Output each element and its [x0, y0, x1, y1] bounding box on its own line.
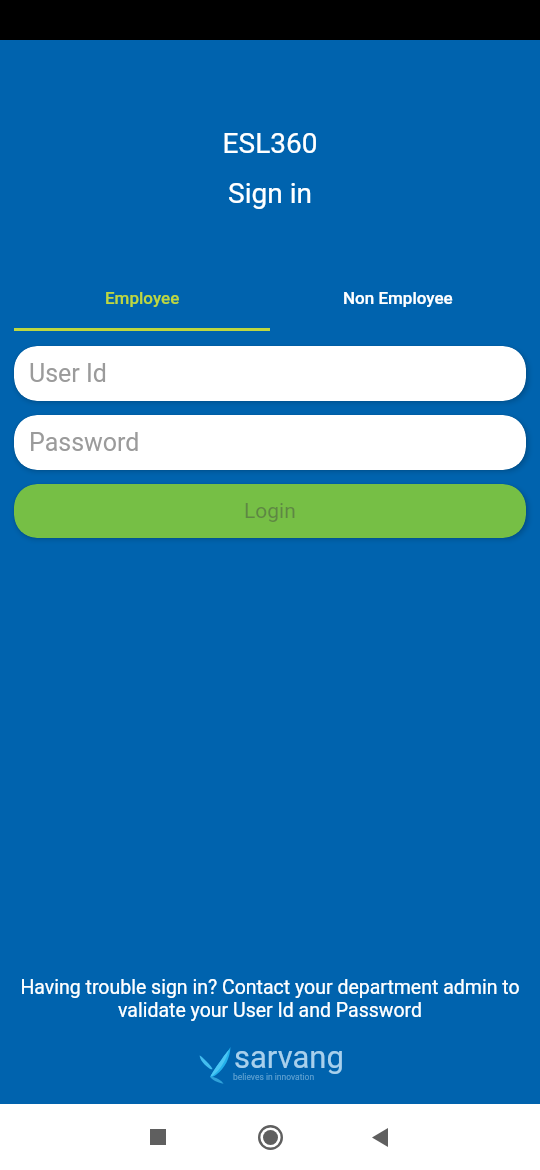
- staticText: Non Employee: [343, 288, 453, 308]
- staticText: Sign in: [0, 177, 540, 210]
- staticText: ESL360: [0, 127, 540, 160]
- button[interactable]: Back: [350, 1107, 410, 1167]
- button[interactable]: Home: [240, 1107, 300, 1167]
- button[interactable]: Login: [14, 484, 526, 538]
- button[interactable]: Employee: [14, 270, 270, 326]
- staticText: Employee: [105, 288, 180, 308]
- staticText: Having trouble sign in? Contact your dep…: [6, 976, 534, 1022]
- button[interactable]: Password: [14, 415, 526, 470]
- staticText: Login: [244, 499, 296, 524]
- staticText: sarvang: [234, 1039, 344, 1075]
- staticText: User Id: [29, 359, 107, 388]
- button[interactable]: Non Employee: [270, 270, 526, 326]
- staticText: Password: [29, 428, 140, 457]
- button[interactable]: Recent apps: [128, 1107, 188, 1167]
- button[interactable]: User Id: [14, 346, 526, 401]
- staticText: believes in innovation: [233, 1072, 315, 1082]
